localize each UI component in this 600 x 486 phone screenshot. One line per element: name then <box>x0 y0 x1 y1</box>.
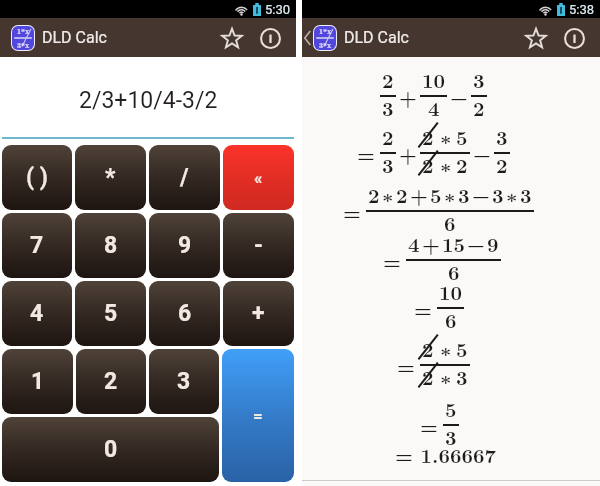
button[interactable]: 6 <box>149 281 220 346</box>
button[interactable]: 9 <box>149 213 220 278</box>
button[interactable]: * <box>75 145 146 210</box>
button[interactable]: + <box>223 281 294 346</box>
staticText: 6 <box>448 257 460 284</box>
staticText: = <box>343 197 361 226</box>
staticText: 2 <box>422 122 434 149</box>
staticText: ∗ <box>440 334 452 361</box>
staticText: 5 <box>104 300 118 327</box>
staticText: 7 <box>30 232 44 259</box>
staticText: 5 <box>456 334 468 361</box>
staticText: 3 <box>473 65 485 92</box>
button[interactable]: Favorite <box>213 19 251 57</box>
staticText: 1*x <box>319 26 332 36</box>
staticText: = <box>383 246 401 275</box>
staticText: ∗ <box>382 180 394 207</box>
staticText: 4 <box>408 229 420 256</box>
staticText: ∗ <box>506 180 518 207</box>
button[interactable]: 5 <box>75 281 146 346</box>
staticText: 2 <box>368 180 380 207</box>
staticText: 2 <box>422 334 434 361</box>
staticText: 3 <box>496 122 508 149</box>
staticText: DLD Calc <box>344 28 409 47</box>
staticText: ( ) <box>26 164 48 191</box>
staticText: + <box>252 300 265 327</box>
staticText: 3*x <box>319 40 332 50</box>
staticText: 9 <box>487 229 499 256</box>
button[interactable]: 7 <box>2 213 72 278</box>
staticText: ∗ <box>444 180 456 207</box>
staticText: = <box>253 406 263 426</box>
staticText: 2 <box>422 150 434 177</box>
staticText: ∗ <box>440 122 452 149</box>
staticText: 2 <box>382 122 394 149</box>
button[interactable]: - <box>223 213 294 278</box>
staticText: DLD Calc <box>42 28 107 47</box>
button[interactable]: = <box>222 349 294 482</box>
staticText: = 1.66667 <box>395 440 496 469</box>
staticText: 3 <box>445 422 457 449</box>
staticText: + <box>399 82 417 111</box>
staticText: 5:38 <box>569 2 595 17</box>
button[interactable]: 2 <box>76 349 146 414</box>
staticText: = <box>420 411 438 440</box>
staticText: 6 <box>445 305 457 332</box>
staticText: « <box>254 168 263 188</box>
staticText: 3 <box>492 180 504 207</box>
staticText: 3 <box>382 150 394 177</box>
staticText: 2 <box>496 150 508 177</box>
staticText: − <box>450 82 468 111</box>
staticText: 4 <box>30 300 44 327</box>
button[interactable]: / <box>149 145 220 210</box>
staticText: 2 <box>104 368 118 395</box>
staticText: 1*x <box>17 26 30 36</box>
button[interactable]: ( ) <box>2 145 72 210</box>
staticText: − <box>472 180 490 207</box>
staticText: * <box>105 164 116 191</box>
staticText: 3 <box>520 180 532 207</box>
staticText: 5 <box>456 122 468 149</box>
staticText: / <box>180 164 189 191</box>
button[interactable]: 0 <box>2 417 219 482</box>
staticText: = <box>397 351 415 380</box>
staticText: 10 <box>439 277 462 304</box>
staticText: 2/3+10/4-3/2 <box>79 87 218 114</box>
staticText: − <box>467 229 485 256</box>
staticText: 6 <box>444 208 456 235</box>
staticText: 3 <box>458 180 470 207</box>
staticText: 3 <box>456 362 468 389</box>
button[interactable]: Navigate up <box>302 18 313 57</box>
button[interactable]: Info <box>251 19 289 57</box>
staticText: 2 <box>396 180 408 207</box>
staticText: 5 <box>445 394 457 421</box>
staticText: + <box>410 180 428 207</box>
staticText: - <box>254 232 263 259</box>
staticText: + <box>399 139 417 168</box>
staticText: 4 <box>428 93 440 120</box>
staticText: 2 <box>382 65 394 92</box>
button[interactable]: 8 <box>75 213 146 278</box>
staticText: 3 <box>177 368 191 395</box>
staticText: 3 <box>382 93 394 120</box>
button[interactable]: 4 <box>2 281 72 346</box>
staticText: − <box>473 139 491 168</box>
staticText: 2 <box>473 93 485 120</box>
button[interactable]: 3 <box>149 349 219 414</box>
staticText: 0 <box>104 436 118 463</box>
staticText: 9 <box>178 232 192 259</box>
staticText: 3*x <box>17 40 30 50</box>
staticText: 5 <box>430 180 442 207</box>
staticText: 2 <box>422 362 434 389</box>
button[interactable]: Favorite <box>517 19 555 57</box>
staticText: ∗ <box>440 150 452 177</box>
staticText: 8 <box>104 232 118 259</box>
staticText: 5:30 <box>265 2 291 17</box>
button[interactable]: Info <box>555 19 593 57</box>
staticText: 2 <box>456 150 468 177</box>
staticText: 10 <box>422 65 445 92</box>
staticText: = <box>414 294 432 323</box>
staticText: 6 <box>178 300 192 327</box>
button[interactable]: 1 <box>2 349 73 414</box>
staticText: + <box>422 229 440 256</box>
staticText: 15 <box>442 229 465 256</box>
button[interactable]: « <box>223 145 294 210</box>
